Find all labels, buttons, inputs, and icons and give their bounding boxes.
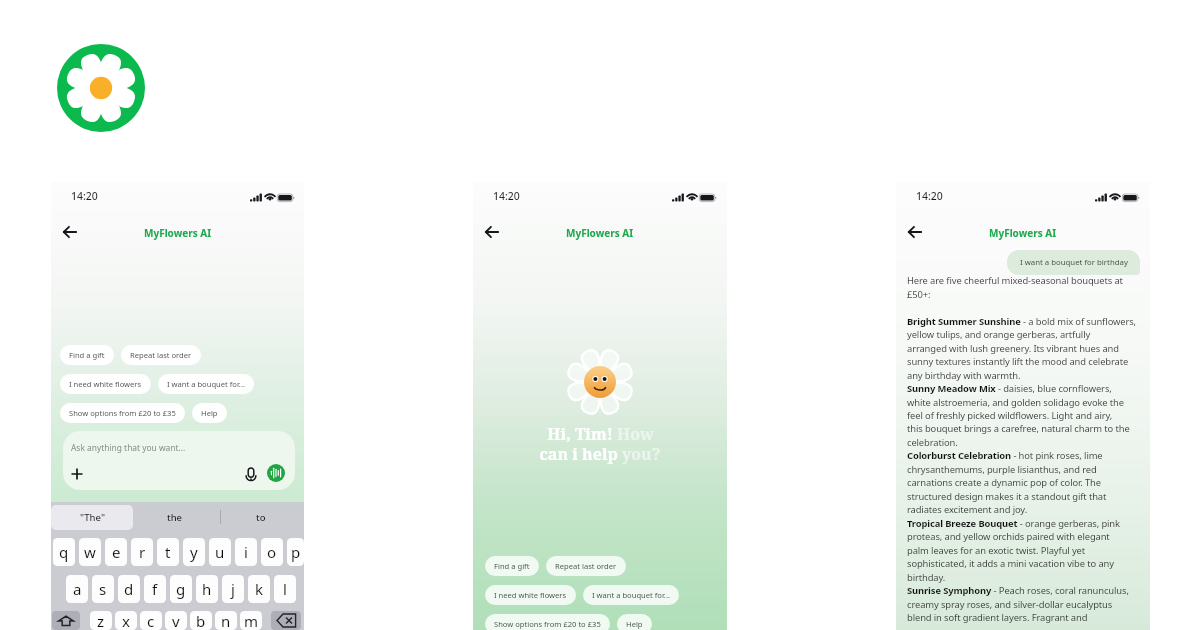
button[interactable]: o: [261, 538, 283, 566]
staticText: I want a bouquet for...: [167, 379, 245, 389]
button[interactable]: the: [141, 505, 209, 530]
button[interactable]: Shift: [52, 611, 80, 630]
staticText: r: [139, 542, 146, 562]
staticText: p: [291, 542, 301, 562]
button[interactable]: "The": [51, 505, 133, 530]
staticText: z: [97, 611, 105, 630]
button[interactable]: Back: [63, 225, 77, 239]
staticText: Sunrise Symphony - Peach roses, coral ra…: [907, 584, 1129, 597]
button[interactable]: Show options from £20 to £35: [485, 614, 610, 630]
button[interactable]: l: [274, 575, 296, 603]
button[interactable]: g: [170, 575, 192, 603]
button[interactable]: b: [190, 611, 212, 630]
button[interactable]: s: [92, 575, 114, 603]
button[interactable]: I want a bouquet for birthday: [1007, 250, 1140, 275]
staticText: Repeat last order: [130, 350, 192, 360]
staticText: radiates excitement and joy.: [907, 503, 1028, 516]
button[interactable]: Ask anything that you want...: [63, 431, 295, 490]
staticText: I need white flowers: [69, 379, 142, 389]
button[interactable]: k: [248, 575, 270, 603]
button[interactable]: v: [165, 611, 187, 630]
button[interactable]: MyFlowers AI: [566, 226, 634, 240]
button[interactable]: I want a bouquet for...: [583, 585, 679, 605]
button[interactable]: Find a gift: [485, 556, 539, 576]
button[interactable]: MyFlowers AI: [144, 226, 212, 240]
staticText: structured design makes it a standout gi…: [907, 490, 1107, 503]
staticText: sunny textures instantly lift the mood a…: [907, 355, 1129, 368]
staticText: v: [172, 611, 180, 630]
button[interactable]: w: [79, 538, 101, 566]
button[interactable]: Repeat last order: [546, 556, 626, 576]
staticText: can i help you?: [539, 443, 661, 465]
button[interactable]: MyFlowers AI: [989, 226, 1057, 240]
button[interactable]: to: [227, 505, 295, 530]
staticText: Tropical Breeze Bouquet - orange gerbera…: [907, 517, 1120, 530]
button[interactable]: Back: [908, 225, 922, 239]
staticText: Hi, Tim! How: [547, 423, 654, 445]
button[interactable]: Backspace: [271, 611, 301, 630]
staticText: the: [167, 511, 183, 524]
staticText: l: [283, 579, 287, 599]
staticText: Show options from £20 to £35: [494, 619, 601, 629]
button[interactable]: p: [287, 538, 304, 566]
button[interactable]: q: [53, 538, 75, 566]
staticText: y: [190, 542, 198, 562]
staticText: I want a bouquet for...: [592, 590, 670, 600]
staticText: this bouquet brings a carefree, natural …: [907, 422, 1130, 435]
staticText: m: [244, 611, 259, 630]
button[interactable]: u: [209, 538, 231, 566]
button[interactable]: j: [222, 575, 244, 603]
staticText: creamy spray roses, and silver-dollar eu…: [907, 598, 1113, 611]
staticText: birthday.: [907, 571, 946, 584]
staticText: k: [255, 579, 264, 599]
button[interactable]: d: [118, 575, 140, 603]
button[interactable]: f: [144, 575, 166, 603]
button[interactable]: a: [66, 575, 88, 603]
staticText: Sunny Meadow Mix - daisies, blue cornflo…: [907, 382, 1112, 395]
button[interactable]: m: [240, 611, 262, 630]
button[interactable]: t: [157, 538, 179, 566]
button[interactable]: h: [196, 575, 218, 603]
staticText: white alstroemeria, and golden solidago …: [907, 396, 1124, 409]
staticText: c: [147, 611, 155, 630]
staticText: w: [84, 542, 96, 562]
staticText: Show options from £20 to £35: [69, 408, 176, 418]
button[interactable]: Add attachment: [69, 466, 85, 482]
staticText: o: [267, 542, 277, 562]
staticText: Find a gift: [494, 561, 530, 571]
button[interactable]: e: [105, 538, 127, 566]
staticText: sophisticated, it adds a mini vacation v…: [907, 557, 1114, 570]
staticText: e: [112, 542, 121, 562]
button[interactable]: MyFlowers logo: [57, 44, 145, 132]
button[interactable]: Find a gift: [60, 345, 114, 365]
staticText: j: [231, 579, 235, 599]
button[interactable]: Voice input: [243, 466, 259, 482]
button[interactable]: x: [115, 611, 137, 630]
button[interactable]: Help: [192, 403, 227, 423]
staticText: Find a gift: [69, 350, 105, 360]
button[interactable]: c: [140, 611, 162, 630]
staticText: i: [244, 542, 248, 562]
button[interactable]: y: [183, 538, 205, 566]
button[interactable]: I need white flowers: [485, 585, 576, 605]
button[interactable]: I need white flowers: [60, 374, 151, 394]
staticText: proteas, and yellow orchids paired with …: [907, 530, 1110, 543]
button[interactable]: r: [131, 538, 153, 566]
button[interactable]: Voice assistant: [267, 464, 285, 482]
button[interactable]: Back: [485, 225, 499, 239]
staticText: celebration.: [907, 436, 958, 449]
staticText: Colorburst Celebration - hot pink roses,…: [907, 449, 1103, 462]
staticText: d: [124, 579, 134, 599]
staticText: Help: [626, 619, 643, 629]
button[interactable]: Repeat last order: [121, 345, 201, 365]
button[interactable]: I want a bouquet for...: [158, 374, 254, 394]
staticText: I need white flowers: [494, 590, 567, 600]
button[interactable]: Show options from £20 to £35: [60, 403, 185, 423]
button[interactable]: z: [90, 611, 112, 630]
staticText: g: [176, 579, 186, 599]
button[interactable]: n: [215, 611, 237, 630]
staticText: n: [221, 611, 231, 630]
staticText: q: [59, 542, 69, 562]
button[interactable]: Help: [617, 614, 652, 630]
button[interactable]: i: [235, 538, 257, 566]
